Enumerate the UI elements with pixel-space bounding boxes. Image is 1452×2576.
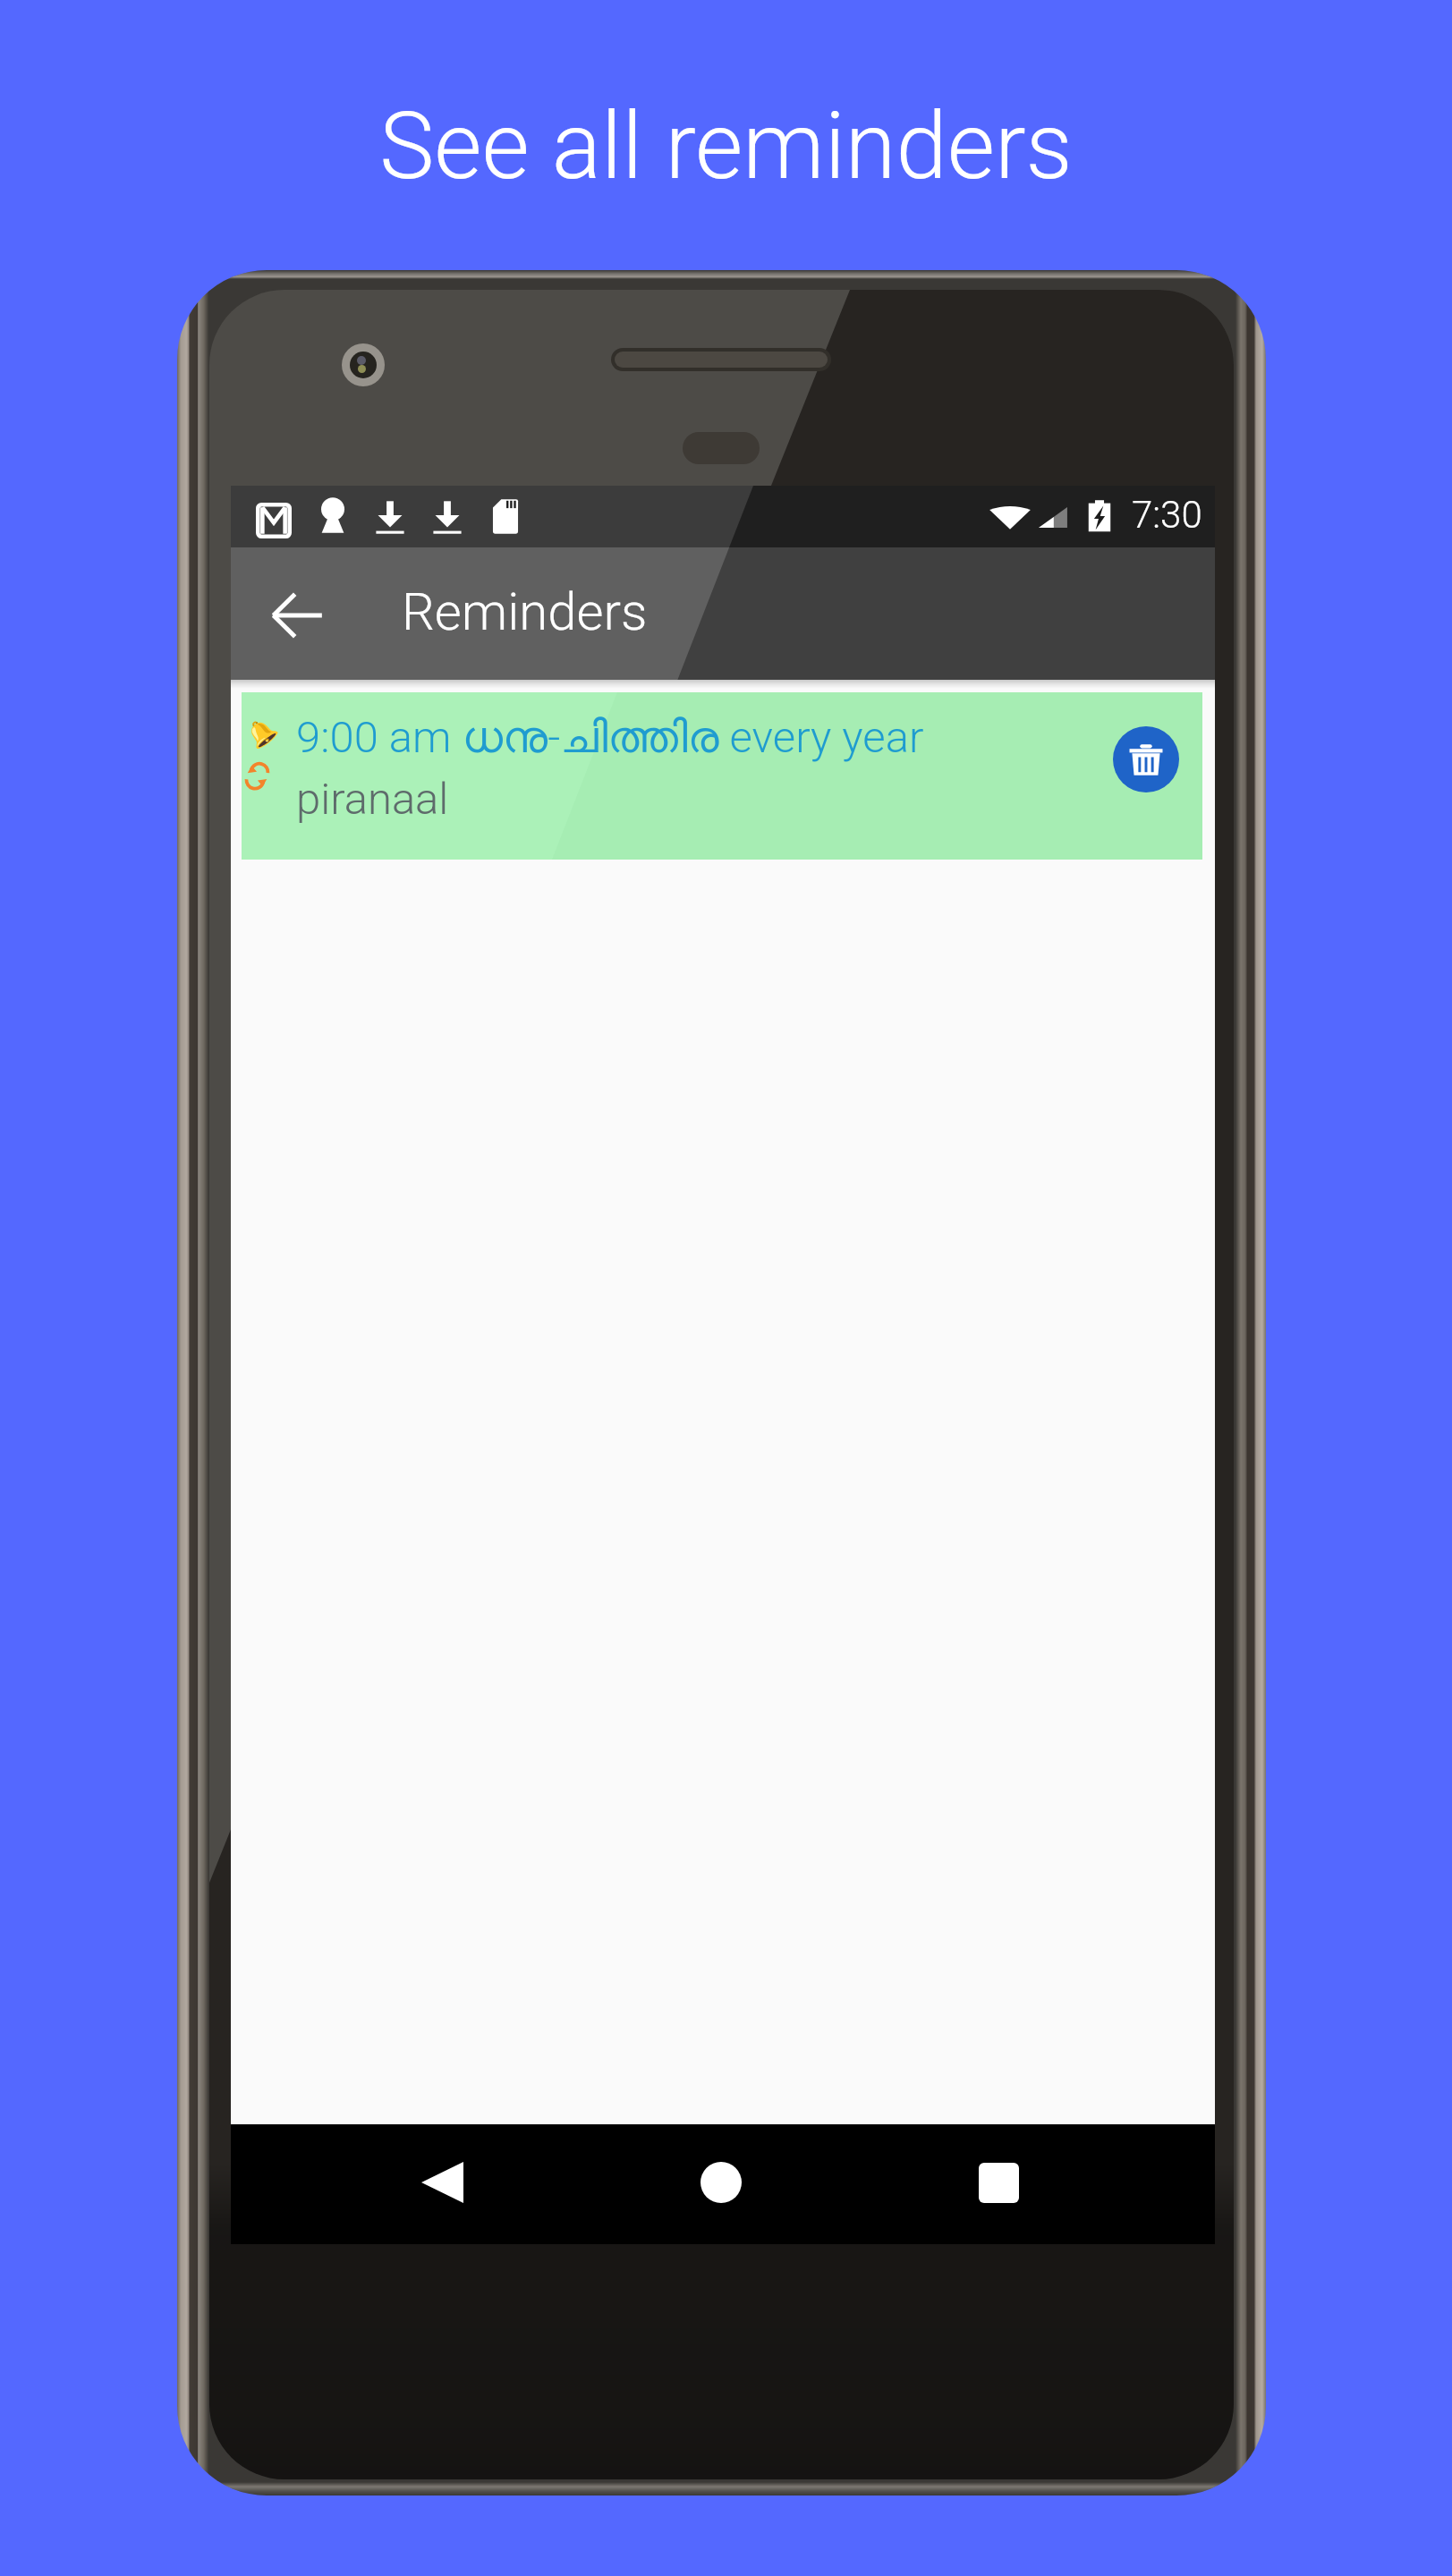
button[interactable]: Recent apps [947, 2131, 1049, 2233]
staticText: 🔔 [240, 712, 282, 753]
staticText: See all reminders [379, 92, 1073, 200]
button[interactable]: Home [670, 2131, 772, 2233]
button[interactable]: Delete reminder [1113, 726, 1179, 792]
button[interactable]: Back [254, 572, 340, 658]
staticText: piranaal [296, 774, 449, 825]
staticText: 7:30 [1132, 493, 1202, 537]
button[interactable]: 9:00 am ധനു-ചിത്തിര every year [242, 692, 1202, 860]
button[interactable]: Back [391, 2131, 493, 2233]
staticText: 9:00 am ധനു-ചിത്തിര every year [296, 712, 924, 763]
staticText: Reminders [402, 581, 648, 642]
